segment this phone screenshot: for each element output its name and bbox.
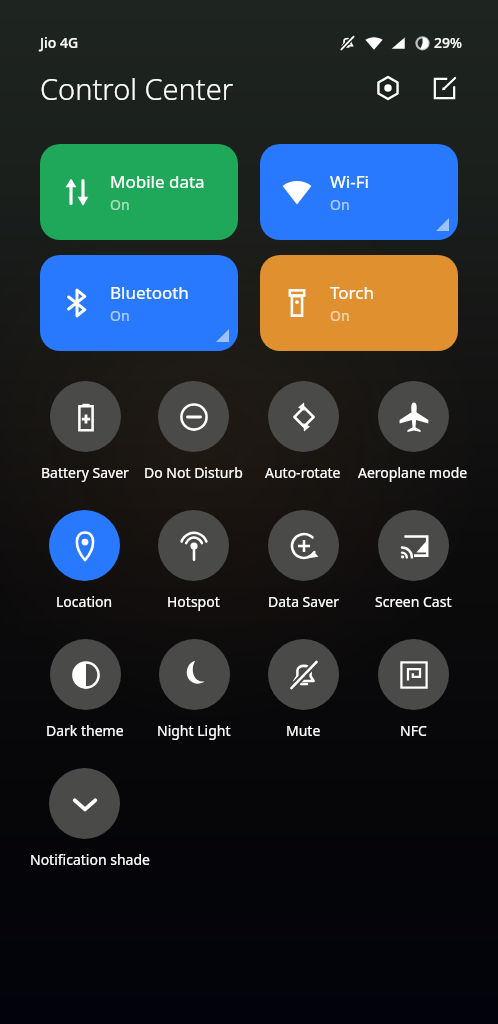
button[interactable]: Auto-rotate: [265, 381, 341, 482]
staticText: Do Not Disturb: [144, 463, 243, 482]
staticText: Torch: [330, 281, 374, 304]
staticText: 29%: [434, 33, 462, 52]
staticText: Control Center: [40, 69, 234, 108]
staticText: NFC: [400, 721, 427, 740]
button[interactable]: Mobile data: [40, 144, 238, 240]
staticText: Hotspot: [167, 592, 220, 611]
staticText: On: [330, 195, 350, 214]
staticText: On: [330, 306, 350, 325]
staticText: Dark theme: [46, 721, 124, 740]
button[interactable]: Hotspot: [158, 510, 229, 611]
button[interactable]: Wi-Fi: [260, 144, 458, 240]
button[interactable]: Battery Saver: [41, 381, 129, 482]
button[interactable]: Torch: [260, 255, 458, 351]
staticText: Mute: [286, 721, 321, 740]
button[interactable]: Mute: [268, 639, 339, 740]
button[interactable]: Data Saver: [268, 510, 339, 611]
button[interactable]: Settings: [366, 66, 410, 110]
button[interactable]: Screen Cast: [375, 510, 452, 611]
staticText: Data Saver: [268, 592, 339, 611]
staticText: On: [110, 306, 130, 325]
staticText: Bluetooth: [110, 281, 189, 304]
staticText: Location: [56, 592, 113, 611]
button[interactable]: Bluetooth: [40, 255, 238, 351]
staticText: Aeroplane mode: [358, 463, 468, 482]
button[interactable]: Aeroplane mode: [358, 381, 468, 482]
button[interactable]: NFC: [378, 639, 449, 740]
staticText: Screen Cast: [375, 592, 452, 611]
button[interactable]: Notification shade: [30, 768, 139, 869]
staticText: Jio 4G: [40, 33, 79, 52]
button[interactable]: Dark theme: [46, 639, 124, 740]
staticText: Auto-rotate: [265, 463, 341, 482]
staticText: On: [110, 195, 130, 214]
staticText: Mobile data: [110, 170, 205, 193]
button[interactable]: Night Light: [157, 639, 231, 740]
staticText: Wi-Fi: [330, 170, 369, 193]
button[interactable]: Do Not Disturb: [144, 381, 243, 482]
button[interactable]: Edit: [422, 66, 466, 110]
staticText: Notification shade: [30, 850, 139, 869]
button[interactable]: Location: [49, 510, 120, 611]
staticText: Night Light: [157, 721, 231, 740]
staticText: Battery Saver: [41, 463, 129, 482]
